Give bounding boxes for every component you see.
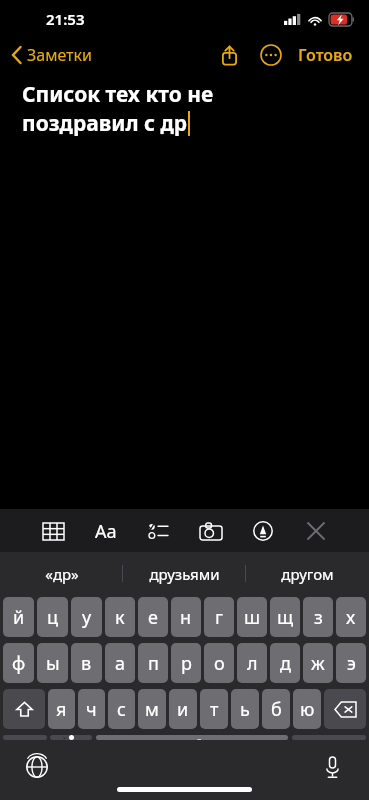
button[interactable]: р <box>171 643 201 683</box>
button[interactable]: «др» <box>0 552 123 595</box>
staticText: г <box>215 605 223 630</box>
staticText: а <box>115 651 126 676</box>
staticText: з <box>314 605 323 630</box>
button[interactable]: Text format <box>89 514 123 548</box>
button[interactable]: т <box>200 689 228 729</box>
button[interactable]: б <box>262 689 290 729</box>
button[interactable]: ф <box>3 643 34 683</box>
button[interactable]: э <box>336 643 366 683</box>
button[interactable]: ы <box>37 643 68 683</box>
button[interactable]: Close keyboard <box>299 514 333 548</box>
button[interactable]: друзьями <box>123 552 246 595</box>
staticText: п <box>148 651 159 676</box>
button[interactable]: а <box>105 643 135 683</box>
button[interactable]: х <box>336 597 366 637</box>
button[interactable]: м <box>138 689 166 729</box>
staticText: поздравил с др <box>22 109 188 138</box>
staticText: м <box>145 697 159 722</box>
button[interactable]: More options <box>254 38 288 72</box>
staticText: о <box>214 651 225 676</box>
button[interactable]: г <box>204 597 234 637</box>
button[interactable]: Пробел <box>96 735 288 740</box>
button[interactable]: ц <box>37 597 68 637</box>
button[interactable]: ш <box>237 597 267 637</box>
staticText: ц <box>47 605 59 630</box>
staticText: 21:53 <box>46 9 85 29</box>
button[interactable]: д <box>270 643 300 683</box>
staticText: к <box>115 605 125 630</box>
staticText: д <box>280 651 291 676</box>
button[interactable]: Markup <box>246 514 280 548</box>
button[interactable]: ж <box>303 643 333 683</box>
staticText: у <box>82 605 92 630</box>
staticText: ы <box>46 651 60 676</box>
staticText: ж <box>311 651 325 676</box>
button[interactable]: Share <box>212 38 246 72</box>
button[interactable]: н <box>171 597 201 637</box>
button[interactable]: Ввод <box>292 735 366 740</box>
staticText: и <box>177 697 189 722</box>
button[interactable]: в <box>71 643 102 683</box>
button[interactable]: я <box>48 689 75 729</box>
staticText: н <box>180 605 192 630</box>
button[interactable]: Dictation <box>315 750 349 784</box>
staticText: я <box>56 697 67 722</box>
staticText: с <box>117 697 126 722</box>
button[interactable]: ь <box>231 689 259 729</box>
staticText: Aa <box>95 519 117 544</box>
button[interactable]: е <box>138 597 168 637</box>
staticText: т <box>210 697 219 722</box>
staticText: р <box>181 651 192 676</box>
button[interactable]: щ <box>270 597 300 637</box>
button[interactable]: Заметки <box>10 40 94 70</box>
staticText: е <box>148 605 158 630</box>
button[interactable]: Shift <box>3 689 45 729</box>
button[interactable]: Готово <box>294 38 357 72</box>
staticText: в <box>81 651 92 676</box>
button[interactable]: п <box>138 643 168 683</box>
staticText: ч <box>86 697 97 722</box>
staticText: Готово <box>298 44 353 66</box>
button[interactable]: ч <box>78 689 105 729</box>
button[interactable]: Camera <box>194 514 228 548</box>
button[interactable]: Checklist <box>141 514 175 548</box>
staticText: ф <box>12 651 26 676</box>
staticText: л <box>247 651 258 676</box>
button[interactable]: у <box>71 597 102 637</box>
staticText: э <box>347 651 356 676</box>
staticText: друзьями <box>149 564 220 584</box>
staticText: ш <box>244 605 261 630</box>
staticText: Заметки <box>27 44 92 66</box>
staticText: й <box>13 605 25 630</box>
button[interactable]: ю <box>293 689 321 729</box>
button[interactable]: Table <box>36 514 70 548</box>
button[interactable]: Backspace <box>324 689 366 729</box>
button[interactable]: и <box>169 689 197 729</box>
button[interactable]: Change keyboard <box>20 750 54 784</box>
button[interactable]: л <box>237 643 267 683</box>
button[interactable]: й <box>3 597 34 637</box>
staticText: Список тех кто не <box>22 80 214 109</box>
button[interactable]: другом <box>246 552 369 595</box>
staticText: б <box>271 697 282 722</box>
staticText: ю <box>300 697 315 722</box>
staticText: ь <box>240 697 250 722</box>
button[interactable]: о <box>204 643 234 683</box>
button[interactable]: с <box>108 689 135 729</box>
staticText: другом <box>281 564 334 584</box>
staticText: х <box>346 605 356 630</box>
button[interactable]: 123 <box>3 735 47 740</box>
staticText: щ <box>277 605 294 630</box>
button[interactable]: Emoji <box>50 735 92 740</box>
button[interactable]: к <box>105 597 135 637</box>
staticText: «др» <box>45 564 79 584</box>
staticText: Пробел <box>164 735 220 740</box>
button[interactable]: з <box>303 597 333 637</box>
